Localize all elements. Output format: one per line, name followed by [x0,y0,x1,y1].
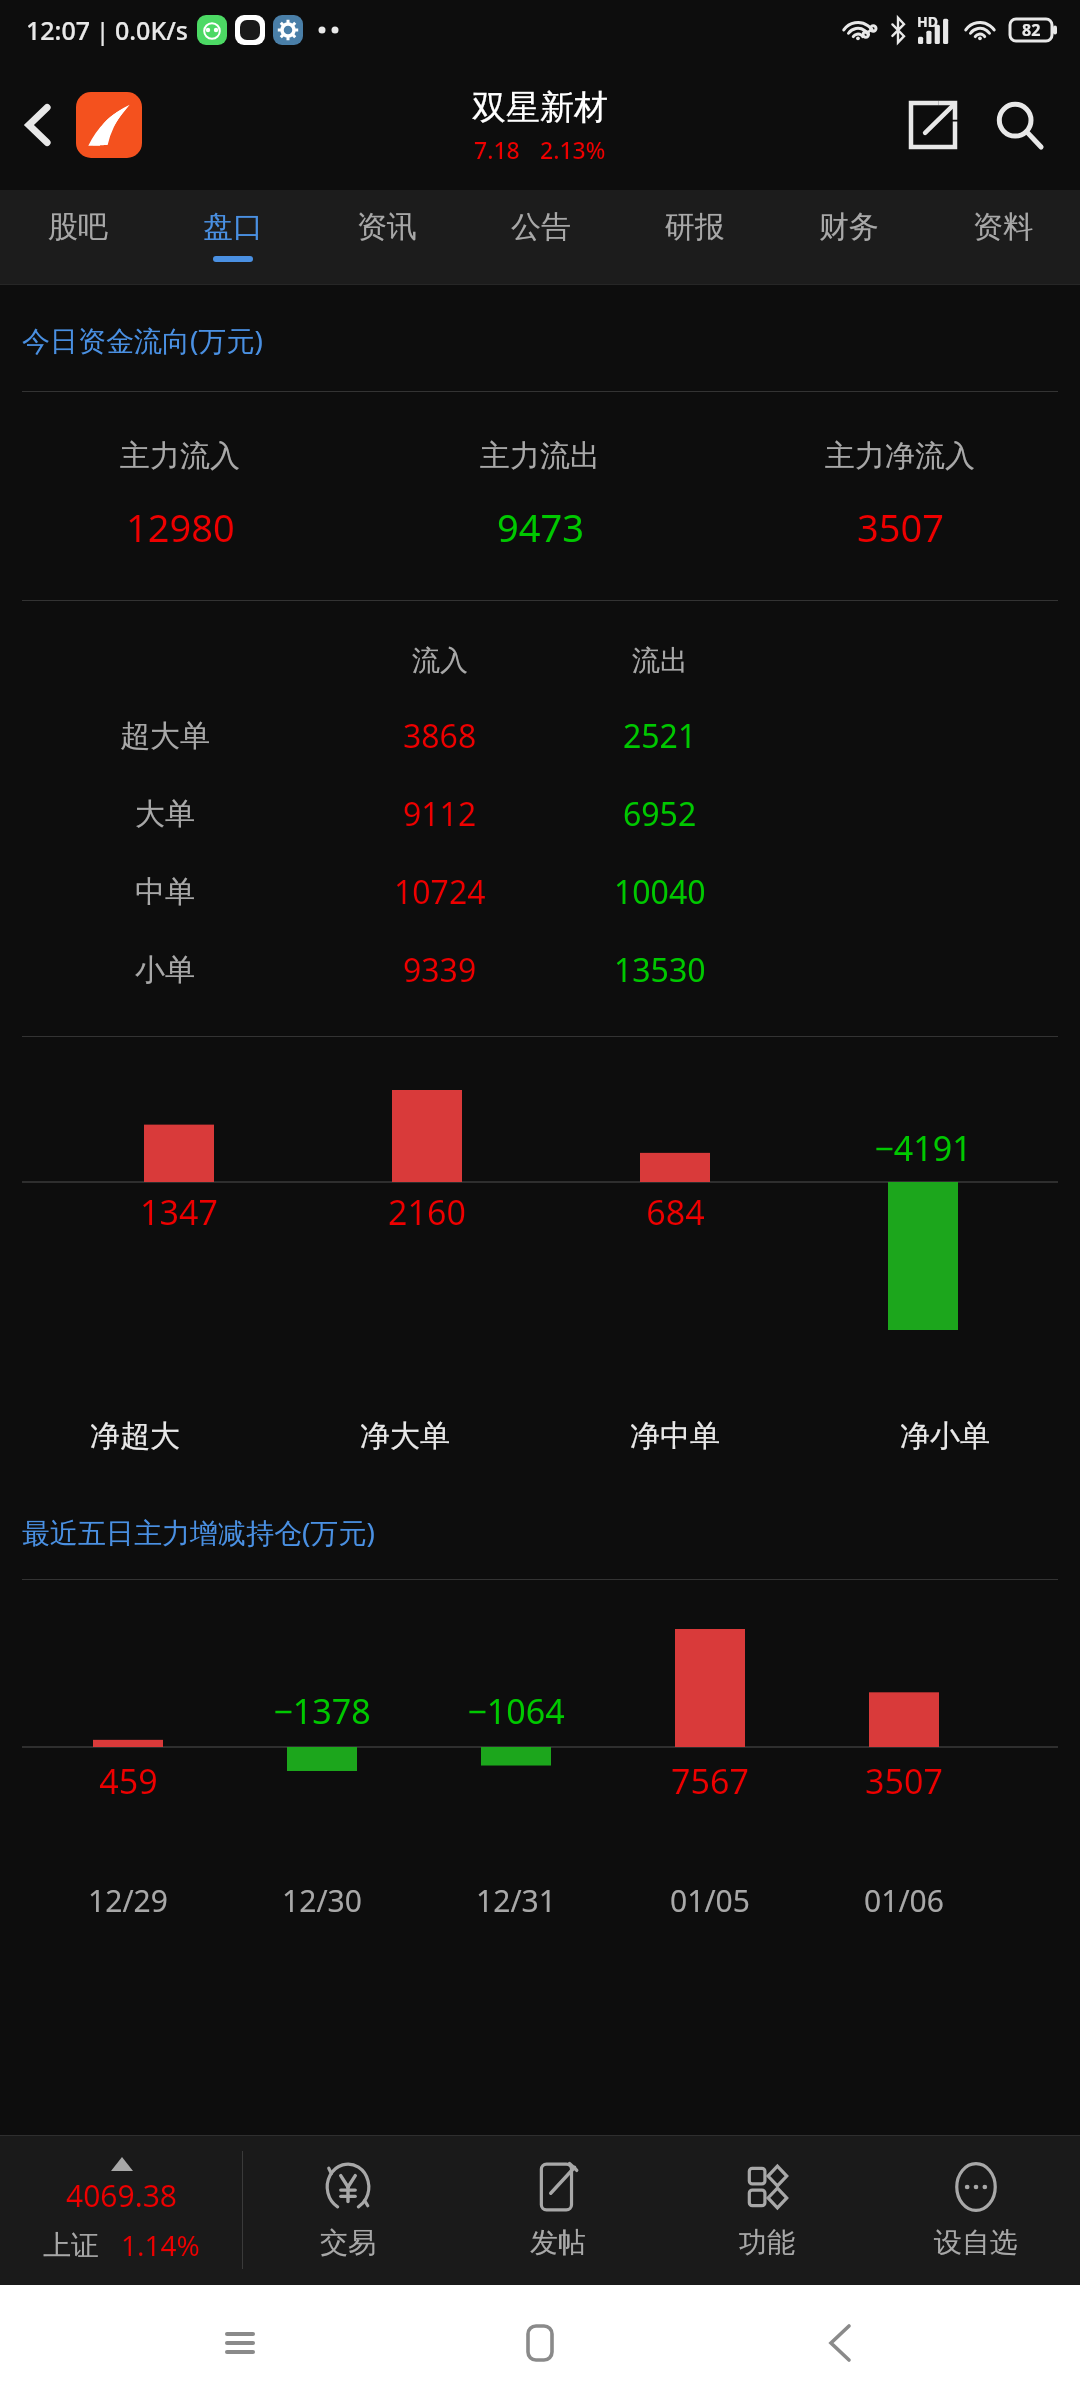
staticText: 7567 [671,1758,749,1804]
staticText: 684 [646,1189,705,1235]
staticText: 1347 [140,1189,218,1235]
button[interactable]: 盘口 [155,190,310,285]
staticText: 12/30 [282,1880,362,1921]
staticText: −1064 [467,1688,565,1734]
staticText: 0.0K/s [115,13,188,47]
button[interactable]: 财务 [772,190,926,285]
staticText: 6952 [623,792,697,836]
staticText: 2.13% [540,134,606,165]
staticText: 主力流出 [480,437,600,475]
staticText: 7.18 [474,134,520,165]
staticText: 最近五日主力增减持仓(万元) [22,1513,375,1551]
staticText: 财务 [819,208,879,246]
staticText: −1378 [273,1688,371,1734]
staticText: 12/31 [476,1880,556,1921]
staticText: 9339 [403,948,477,992]
button[interactable]: 资料 [926,190,1080,285]
staticText: 3507 [857,501,944,553]
staticText: 超大单 [120,717,210,755]
button[interactable]: 4069.38 [0,2135,242,2285]
staticText: 12/29 [88,1880,168,1921]
staticText: 今日资金流向(万元) [22,321,263,359]
button[interactable]: Search [976,75,1062,175]
staticText: 设自选 [934,2225,1018,2260]
staticText: 发帖 [530,2225,586,2260]
staticText: 主力净流入 [825,437,975,475]
button[interactable]: Back [780,2285,900,2400]
staticText: 01/06 [864,1880,944,1921]
staticText: 流入 [412,643,468,678]
button[interactable]: 功能 [662,2135,871,2285]
staticText: 3507 [865,1758,943,1804]
button[interactable]: 股吧 [0,190,155,285]
staticText: 10724 [394,870,486,914]
staticText: 资讯 [357,208,417,246]
staticText: 4069.38 [66,2175,177,2216]
staticText: 2160 [388,1189,466,1235]
staticText: HD [917,12,938,31]
staticText: 盘口 [203,208,263,246]
staticText: 459 [99,1758,158,1804]
staticText: 资料 [973,208,1033,246]
staticText: 9112 [403,792,477,836]
button[interactable]: Home [480,2285,600,2400]
staticText: 主力流入 [120,437,240,475]
staticText: 研报 [665,208,725,246]
button[interactable]: 公告 [464,190,618,285]
staticText: 股吧 [48,208,108,246]
button[interactable]: 发帖 [453,2135,662,2285]
staticText: 82 [1022,19,1041,41]
button[interactable]: 交易 [243,2135,453,2285]
staticText: 大单 [135,795,195,833]
staticText: 双星新材 [472,86,608,129]
staticText: 1.14% [121,2226,200,2264]
staticText: 净小单 [900,1417,990,1455]
staticText: 3868 [403,714,477,758]
staticText: 净大单 [360,1417,450,1455]
button[interactable]: Recent apps [180,2285,300,2400]
staticText: 净超大 [90,1417,180,1455]
staticText: 10040 [614,870,706,914]
button[interactable]: Share [890,75,976,175]
staticText: 交易 [320,2225,376,2260]
staticText: 功能 [739,2225,795,2260]
staticText: 12980 [126,501,235,553]
staticText: 中单 [135,873,195,911]
staticText: 公告 [511,208,571,246]
staticText: 12:07 [26,13,91,47]
button[interactable]: 资讯 [310,190,464,285]
staticText: | [96,14,110,47]
button[interactable]: Back [0,60,76,190]
staticText: 2521 [623,714,697,758]
staticText: 13530 [614,948,706,992]
staticText: −4191 [874,1125,972,1171]
staticText: 小单 [135,951,195,989]
staticText: 9473 [497,501,584,553]
staticText: 01/05 [670,1880,750,1921]
button[interactable]: 设自选 [871,2135,1080,2285]
staticText: 上证 [43,2228,99,2263]
staticText: 净中单 [630,1417,720,1455]
staticText: 流出 [632,643,688,678]
button[interactable]: 研报 [618,190,772,285]
button[interactable]: App logo [76,92,142,158]
